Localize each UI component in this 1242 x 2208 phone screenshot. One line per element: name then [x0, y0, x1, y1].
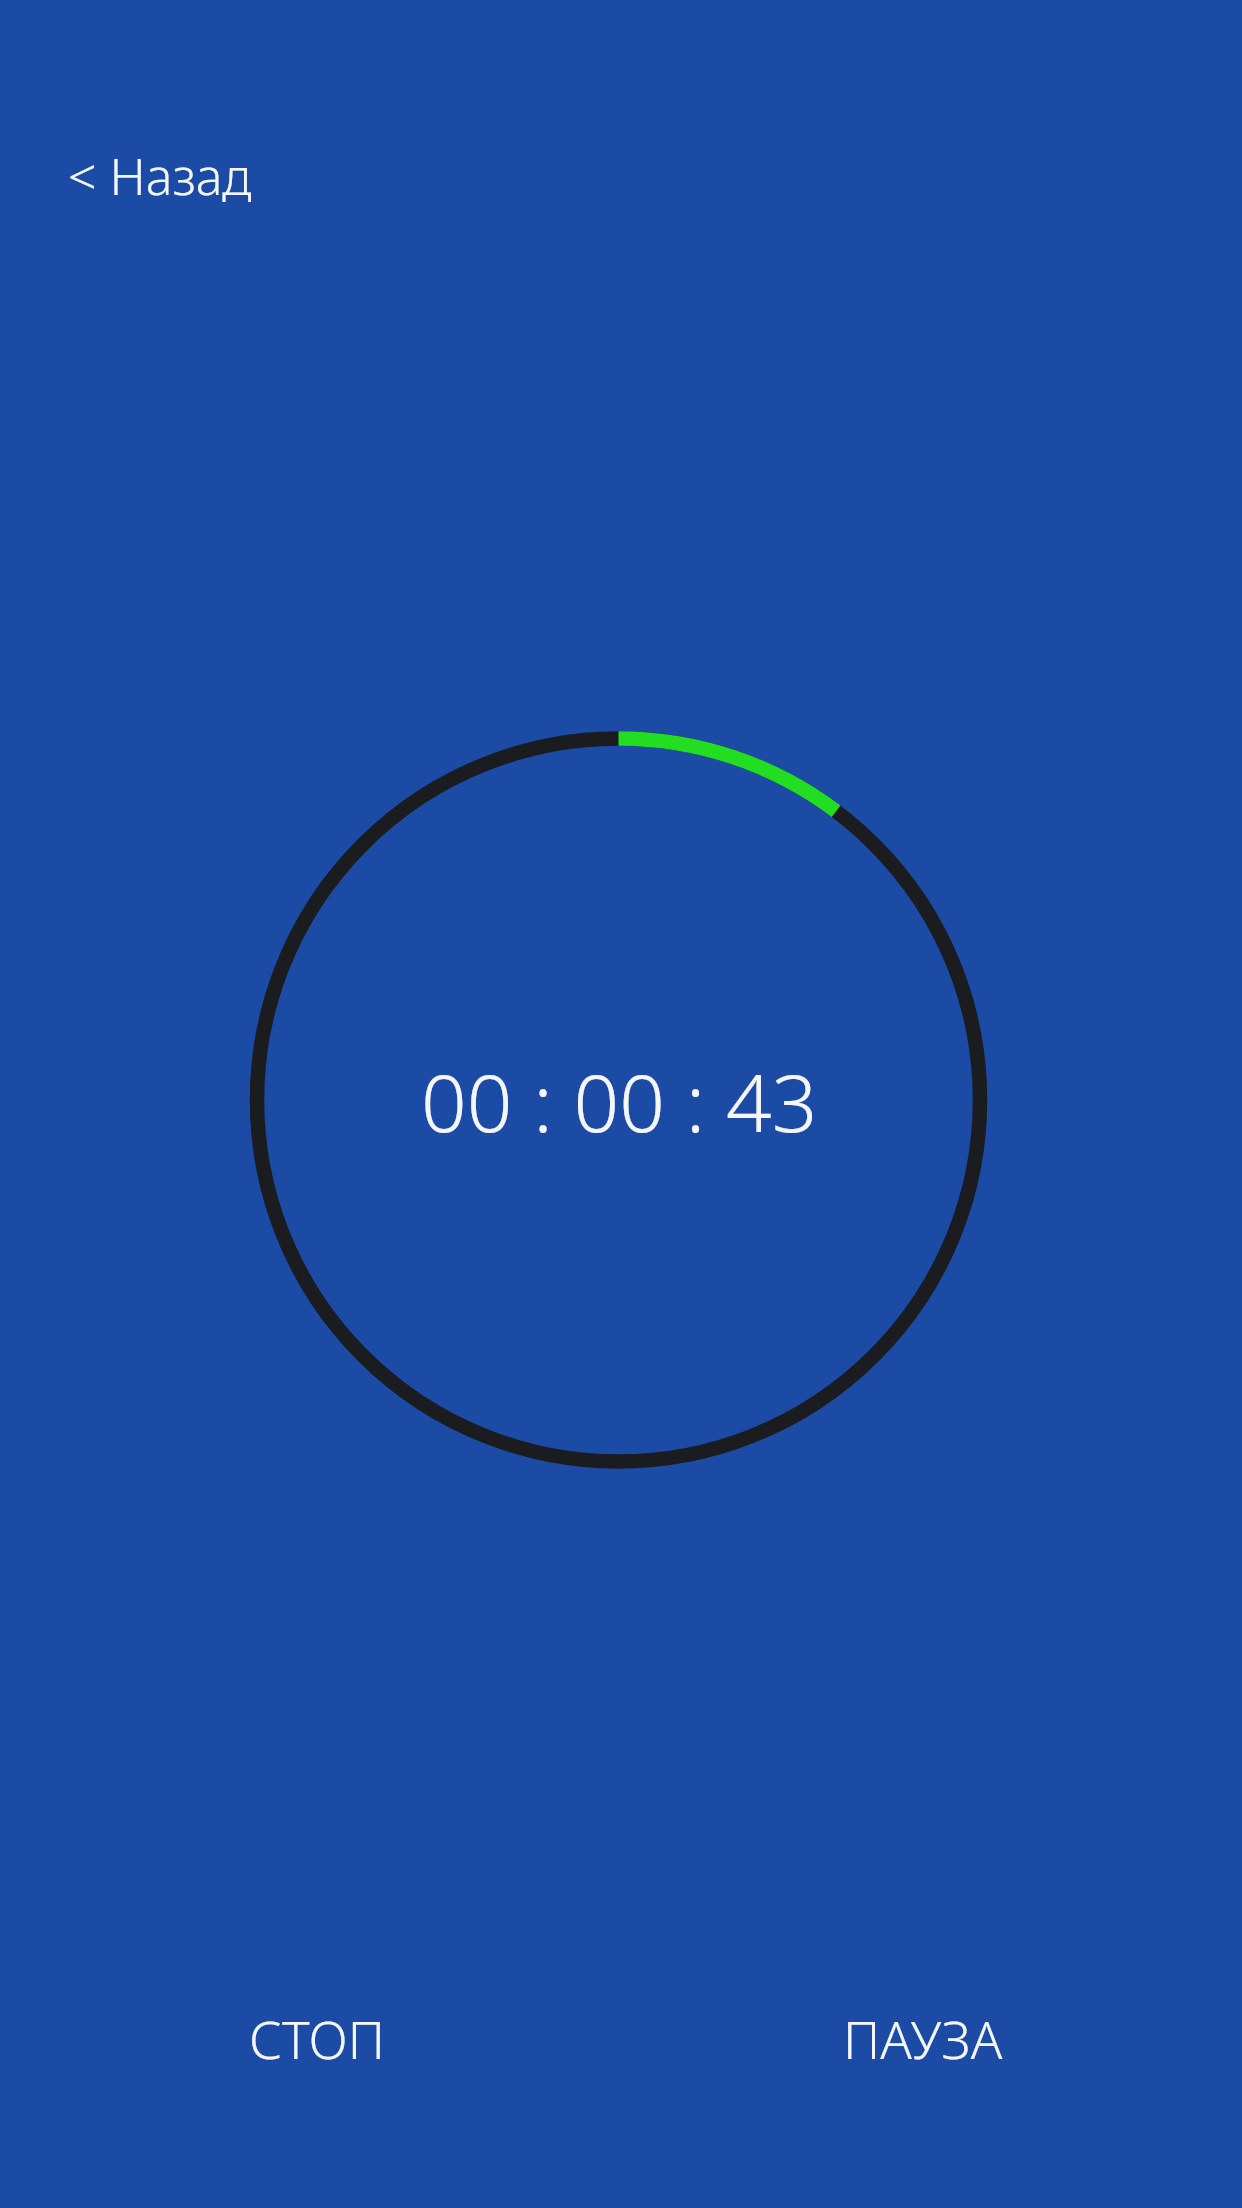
other: Timer progress 00:00:43	[250, 735, 987, 1468]
staticText: 00 : 00 : 43	[421, 1046, 818, 1155]
staticText: СТОП	[249, 2003, 385, 2074]
staticText: ПАУЗА	[843, 2003, 1003, 2074]
button[interactable]: ПАУЗА	[792, 1986, 1054, 2090]
button[interactable]: < Назад	[40, 126, 270, 226]
button[interactable]: СТОП	[186, 1986, 448, 2090]
staticText: < Назад	[68, 142, 252, 210]
